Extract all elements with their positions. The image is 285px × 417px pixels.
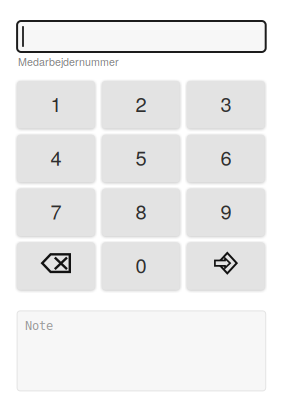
button[interactable]: 1: [17, 81, 95, 128]
button[interactable]: Note: [17, 311, 266, 391]
staticText: Medarbejdernummer: [18, 54, 119, 69]
button[interactable]: 4: [17, 135, 95, 182]
button[interactable]: 0: [102, 242, 180, 290]
button[interactable]: 2: [102, 81, 180, 128]
button[interactable]: 6: [187, 135, 265, 182]
button[interactable]: Delete: [17, 242, 95, 290]
staticText: 4: [50, 143, 61, 171]
staticText: 9: [220, 196, 231, 225]
staticText: 3: [220, 89, 231, 117]
button[interactable]: 8: [102, 189, 180, 236]
staticText: 5: [135, 143, 146, 171]
button[interactable]: 7: [17, 189, 95, 236]
staticText: 2: [135, 89, 146, 117]
staticText: 0: [135, 250, 146, 279]
button[interactable]: 5: [102, 135, 180, 182]
staticText: 6: [220, 143, 231, 171]
button[interactable]: 3: [187, 81, 265, 128]
button[interactable]: 9: [187, 189, 265, 236]
staticText: Note: [25, 319, 53, 333]
staticText: 8: [135, 196, 146, 225]
staticText: 1: [50, 89, 61, 117]
button[interactable]: Submit: [187, 242, 265, 290]
staticText: 7: [50, 196, 61, 225]
